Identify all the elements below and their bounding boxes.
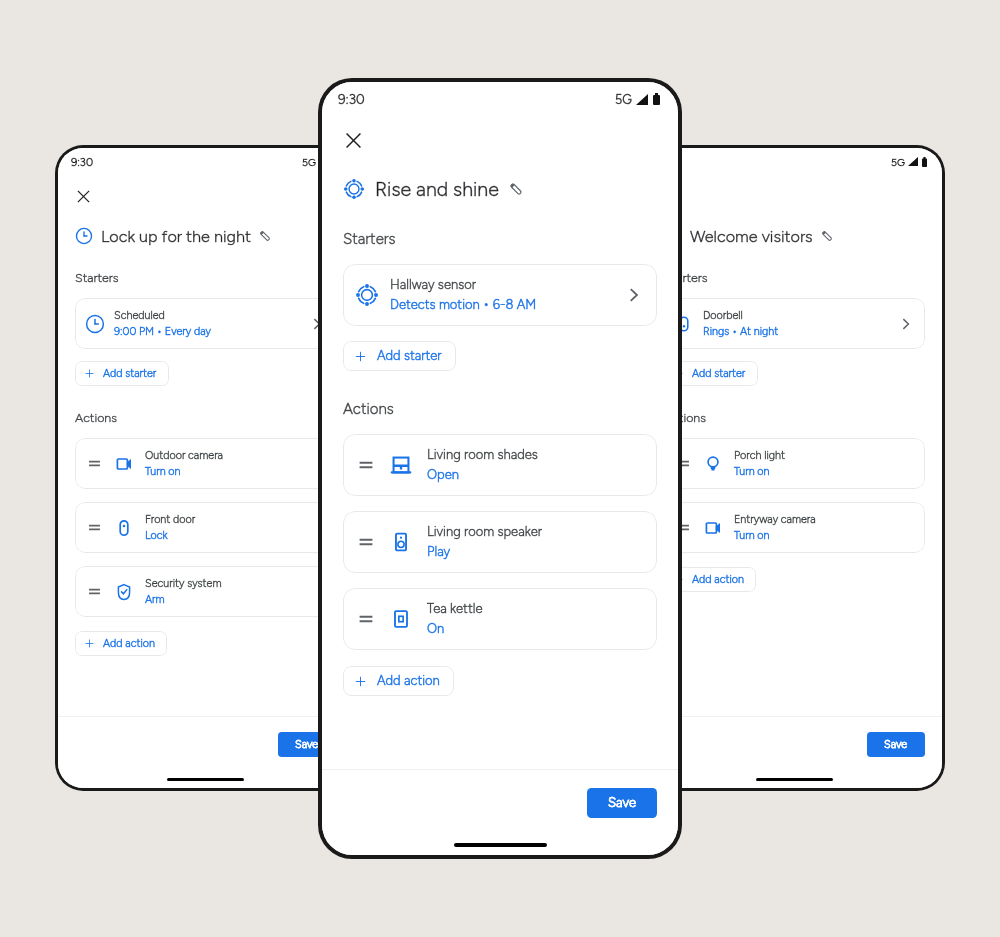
staticText: Detects motion • 6-8 AM <box>390 297 537 313</box>
staticText: Doorbell <box>703 309 743 322</box>
staticText: On <box>427 621 445 637</box>
staticText: Arm <box>145 593 165 606</box>
staticText: Save <box>884 738 908 751</box>
staticText: Tea kettle <box>427 601 483 617</box>
button[interactable]: Hallway sensor <box>343 264 657 326</box>
staticText: Save <box>295 738 319 751</box>
button[interactable]: Add action <box>664 567 756 592</box>
staticText: 9:30 <box>660 155 683 168</box>
staticText: Security system <box>145 577 222 590</box>
button[interactable]: Entryway camera <box>664 502 925 553</box>
staticText: Save <box>884 738 908 751</box>
staticText: Welcome visitors <box>690 227 813 246</box>
staticText: Rise and shine <box>375 177 499 201</box>
staticText: Lock up for the night <box>101 227 251 246</box>
staticText: Rings • At night <box>703 325 779 338</box>
staticText: Doorbell <box>703 309 743 322</box>
staticText: Porch light <box>734 449 785 462</box>
button[interactable]: Close <box>70 183 96 209</box>
staticText: Scheduled <box>114 309 165 322</box>
staticText: 9:30 <box>71 155 94 168</box>
staticText: 5G <box>891 156 905 168</box>
staticText: Starters <box>664 270 708 285</box>
staticText: Starters <box>343 230 396 248</box>
staticText: 9:30 <box>71 155 94 168</box>
staticText: 9:30 <box>338 91 365 107</box>
button[interactable]: Save <box>867 732 925 757</box>
button[interactable]: Add starter <box>664 361 758 386</box>
staticText: Add starter <box>692 367 746 380</box>
staticText: Rings • At night <box>703 325 779 338</box>
staticText: Actions <box>75 410 117 425</box>
staticText: Front door <box>145 513 196 526</box>
staticText: Porch light <box>734 449 785 462</box>
staticText: Turn on <box>734 529 770 542</box>
staticText: Actions <box>75 410 117 425</box>
staticText: Actions <box>343 400 394 418</box>
button[interactable]: Add action <box>75 631 167 656</box>
staticText: Rise and shine <box>375 177 499 201</box>
staticText: Turn on <box>145 465 181 478</box>
button[interactable]: Save <box>587 788 657 818</box>
staticText: 5G <box>615 92 632 107</box>
staticText: On <box>427 621 445 637</box>
staticText: Tea kettle <box>427 601 483 617</box>
staticText: Add action <box>692 573 744 586</box>
staticText: Add starter <box>377 348 442 364</box>
button[interactable]: Porch light <box>664 438 925 489</box>
staticText: Add starter <box>692 367 746 380</box>
button[interactable]: Add action <box>343 666 454 696</box>
staticText: 9:30 <box>660 155 683 168</box>
button[interactable]: Close <box>659 183 685 209</box>
staticText: Entryway camera <box>734 513 816 526</box>
staticText: Lock <box>145 529 168 542</box>
staticText: Welcome visitors <box>690 227 813 246</box>
staticText: Detects motion • 6-8 AM <box>390 297 537 313</box>
staticText: Add action <box>377 673 440 689</box>
staticText: 5G <box>615 92 632 107</box>
staticText: Arm <box>145 593 165 606</box>
staticText: Actions <box>664 410 706 425</box>
staticText: Turn on <box>734 465 770 478</box>
staticText: Save <box>295 738 319 751</box>
staticText: Add action <box>103 637 155 650</box>
button[interactable]: Security system <box>75 566 336 617</box>
staticText: 5G <box>302 156 316 168</box>
staticText: Living room speaker <box>427 524 542 540</box>
staticText: Lock <box>145 529 168 542</box>
staticText: Play <box>427 544 451 560</box>
button[interactable]: Add starter <box>75 361 169 386</box>
staticText: Open <box>427 467 459 483</box>
staticText: Add starter <box>377 348 442 364</box>
staticText: Living room shades <box>427 447 538 463</box>
button[interactable]: Living room shades <box>343 434 657 496</box>
button[interactable]: Living room speaker <box>343 511 657 573</box>
button[interactable]: Scheduled <box>75 298 336 349</box>
button[interactable]: Tea kettle <box>343 588 657 650</box>
staticText: Scheduled <box>114 309 165 322</box>
staticText: Security system <box>145 577 222 590</box>
staticText: Add starter <box>103 367 157 380</box>
staticText: 9:00 PM • Every day <box>114 325 212 338</box>
staticText: Hallway sensor <box>390 277 476 293</box>
button[interactable]: Doorbell <box>664 298 925 349</box>
staticText: Hallway sensor <box>390 277 476 293</box>
button[interactable]: Save <box>278 732 336 757</box>
staticText: 5G <box>302 156 316 168</box>
staticText: Starters <box>75 270 119 285</box>
staticText: Save <box>608 795 636 811</box>
staticText: Living room speaker <box>427 524 542 540</box>
staticText: 5G <box>891 156 905 168</box>
button[interactable]: Add starter <box>343 341 456 371</box>
staticText: Front door <box>145 513 196 526</box>
staticText: 9:30 <box>338 91 365 107</box>
staticText: Living room shades <box>427 447 538 463</box>
staticText: Actions <box>343 400 394 418</box>
staticText: Turn on <box>734 465 770 478</box>
button[interactable]: Front door <box>75 502 336 553</box>
staticText: Add starter <box>103 367 157 380</box>
button[interactable]: Close <box>337 124 369 156</box>
staticText: Add action <box>103 637 155 650</box>
button[interactable]: Outdoor camera <box>75 438 336 489</box>
staticText: Outdoor camera <box>145 449 223 462</box>
